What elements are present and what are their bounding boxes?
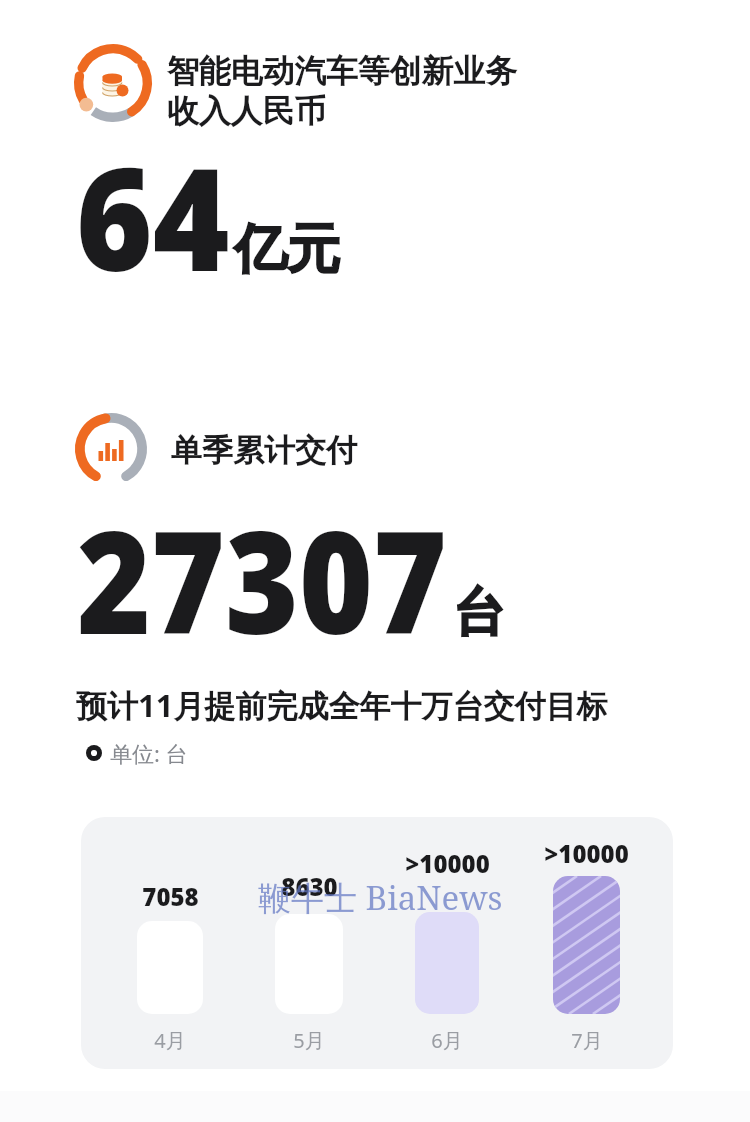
- staticText: 智能电动汽车等创新业务: [167, 51, 517, 91]
- staticText: 预计11月提前完成全年十万台交付目标: [76, 684, 608, 726]
- button[interactable]: 7058: [97, 880, 243, 1050]
- button[interactable]: >10000: [375, 847, 519, 1050]
- staticText: 亿元: [234, 216, 340, 283]
- staticText: >10000: [405, 847, 490, 880]
- staticText: 单季累计交付: [171, 431, 357, 470]
- staticText: 6月: [431, 1027, 463, 1054]
- staticText: 单位: 台: [110, 738, 188, 768]
- staticText: >10000: [544, 837, 629, 870]
- staticText: 收入人民币: [167, 91, 326, 131]
- staticText: 64: [76, 119, 230, 312]
- staticText: 台: [453, 580, 505, 646]
- button[interactable]: 8630: [235, 870, 383, 1050]
- button[interactable]: >10000: [513, 837, 660, 1050]
- staticText: 鞭牛士 BiaNews: [258, 875, 503, 920]
- staticText: 7058: [142, 880, 199, 913]
- staticText: 8630: [281, 870, 338, 903]
- other: Revenue donut chart: [74, 44, 152, 122]
- button[interactable]: Delivery progress gauge: [60, 400, 680, 770]
- staticText: 27307: [77, 482, 448, 675]
- button[interactable]: Revenue donut chart: [60, 30, 680, 300]
- staticText: 7月: [571, 1027, 603, 1054]
- staticText: 4月: [154, 1027, 186, 1054]
- staticText: 5月: [293, 1027, 325, 1054]
- other: Delivery progress gauge: [75, 413, 147, 485]
